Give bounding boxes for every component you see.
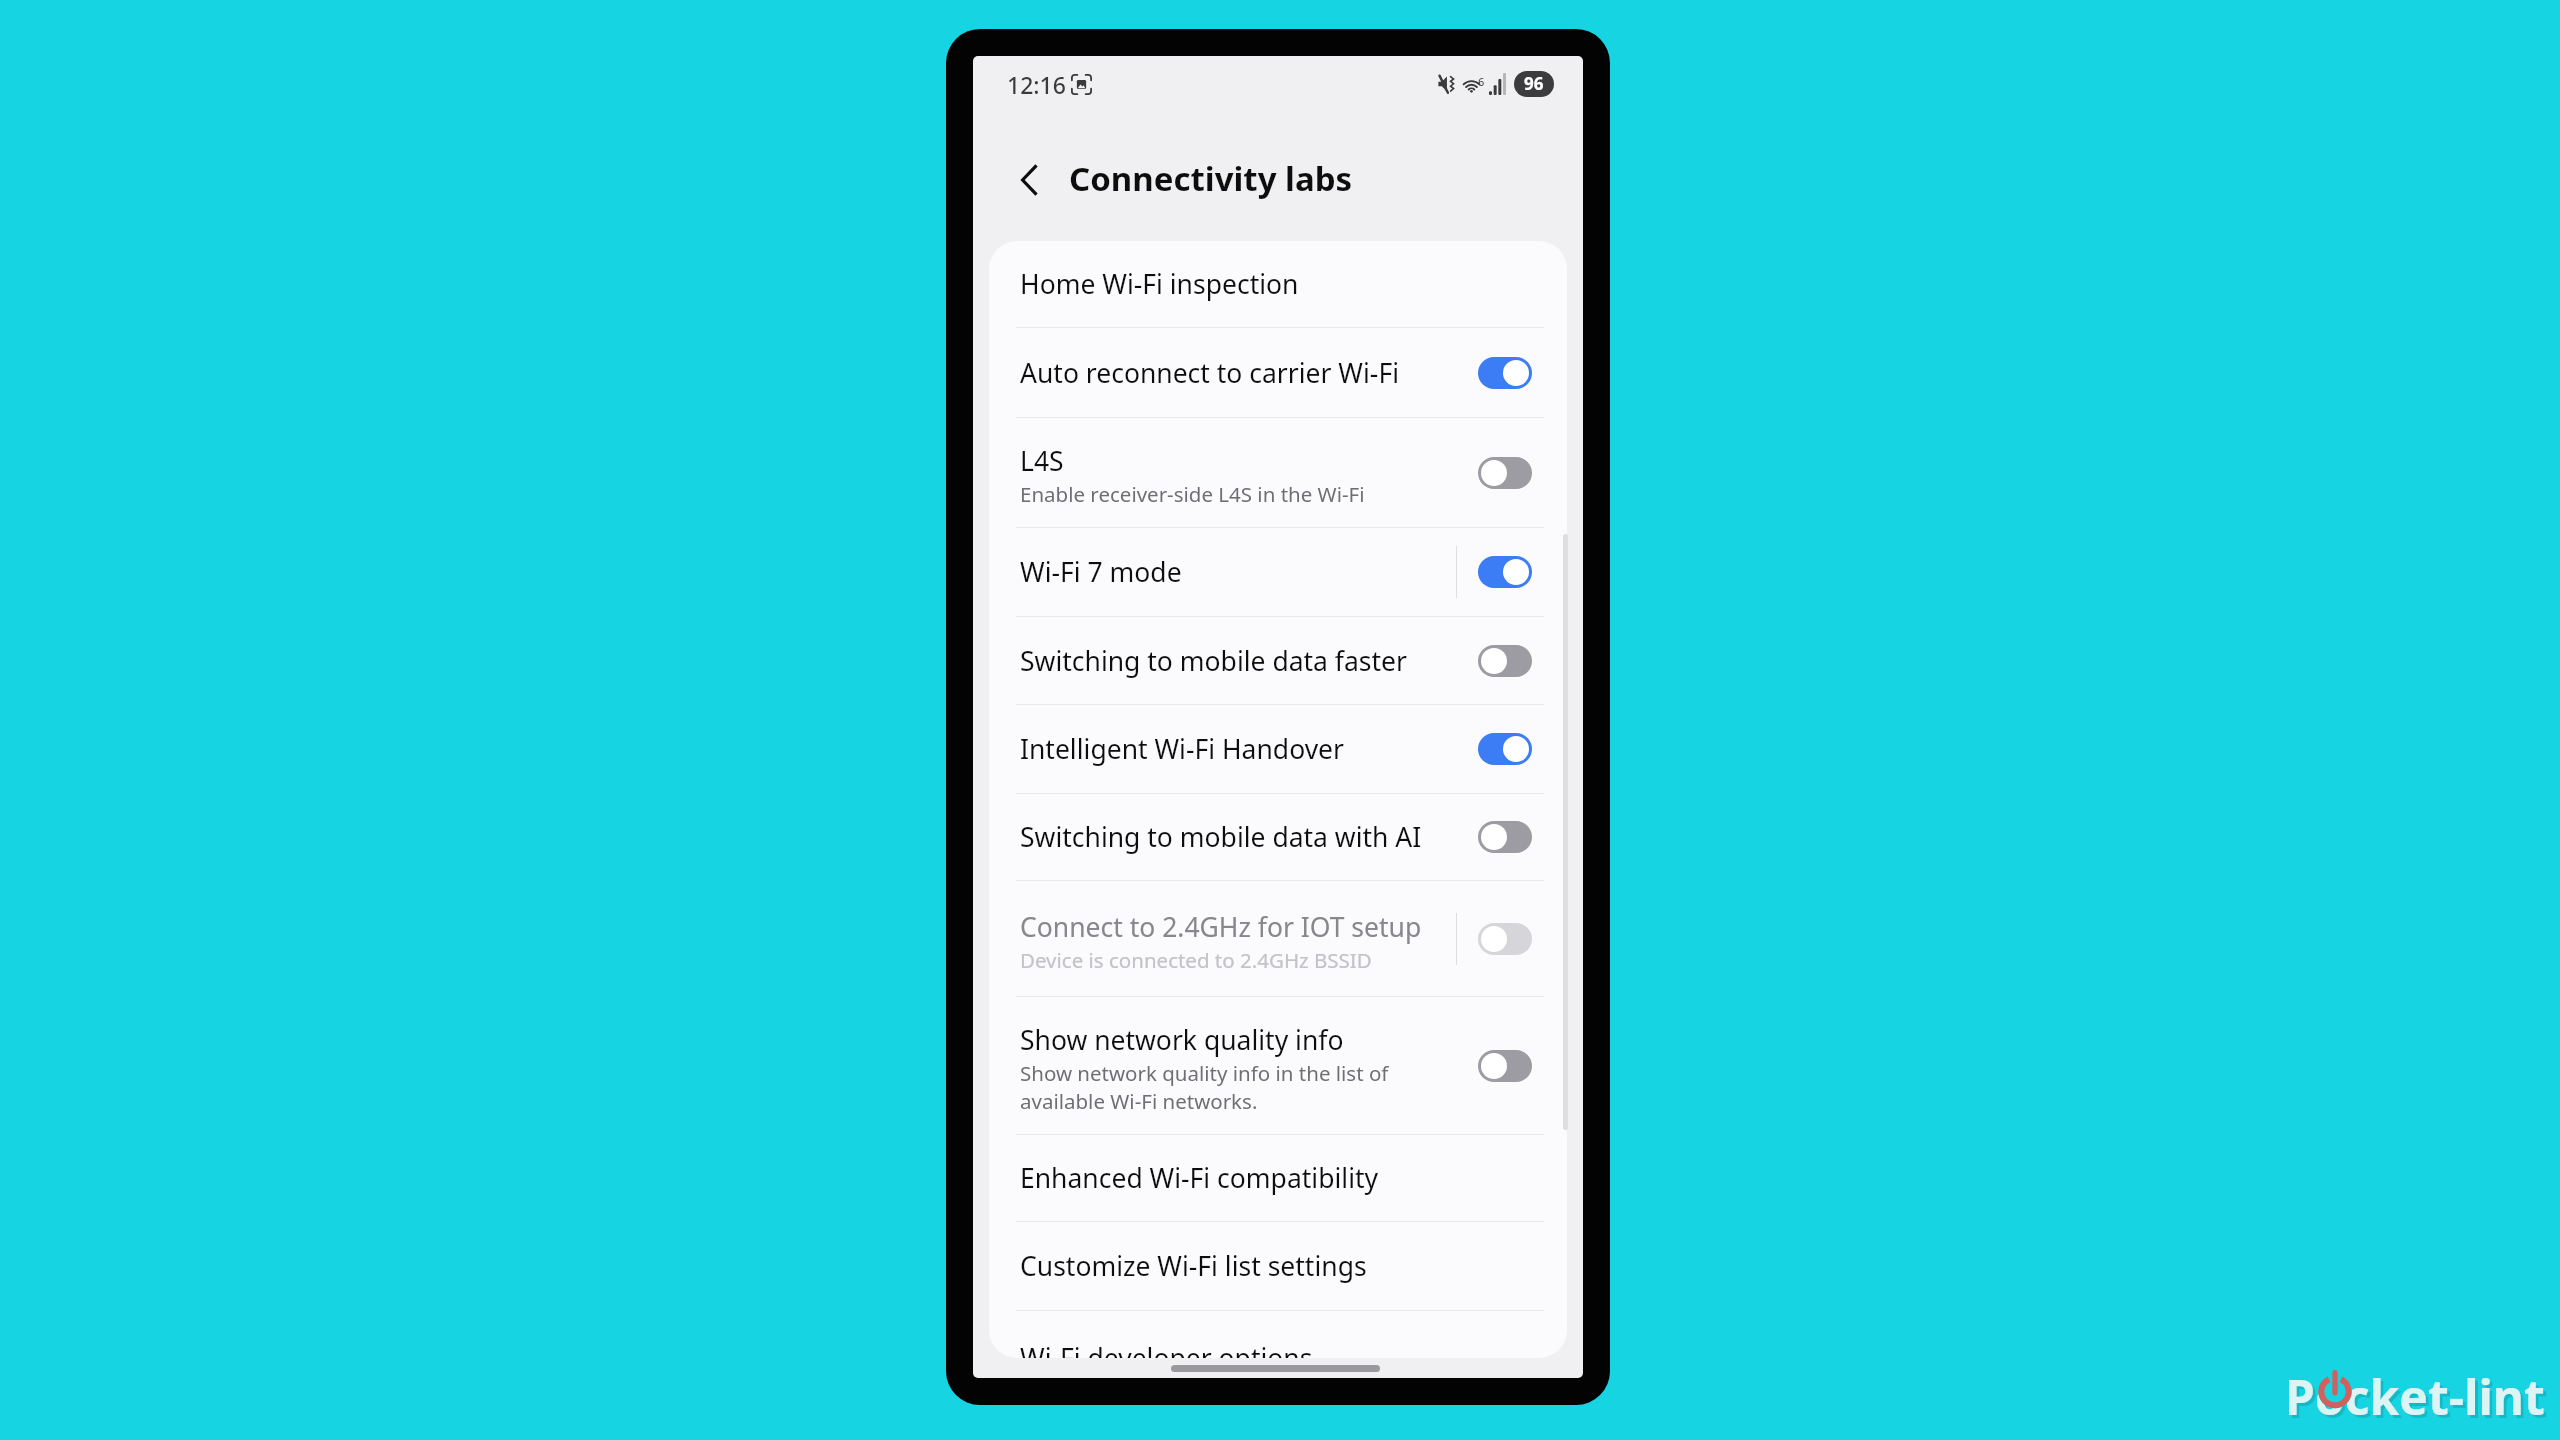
staticText: 6 [1478,74,1485,89]
button[interactable]: Turn off [1478,733,1532,765]
button[interactable]: Turn on [1478,645,1532,677]
staticText: 96 [1524,72,1544,95]
button[interactable]: Show network quality info [989,997,1567,1135]
button[interactable]: Intelligent Wi-Fi Handover [989,705,1567,794]
button[interactable]: Wi-Fi developer options [989,1311,1567,1358]
button[interactable]: Customize Wi-Fi list settings [989,1222,1567,1311]
staticText: Connectivity labs [1069,156,1353,201]
button[interactable]: Enhanced Wi-Fi compatibility [989,1135,1567,1222]
staticText: Show network quality info [1020,1022,1344,1058]
staticText: Device is connected to 2.4GHz BSSID [1020,946,1372,974]
staticText: Enhanced Wi-Fi compatibility [1020,1160,1379,1196]
button[interactable]: Turn on [1478,821,1532,853]
button[interactable]: Turn on [1478,457,1532,489]
button[interactable]: Turn off [1478,556,1532,588]
staticText: Switching to mobile data faster [1020,643,1408,679]
button[interactable]: Home Wi-Fi inspection [989,241,1567,328]
staticText: Home Wi-Fi inspection [1020,266,1299,302]
staticText: Pocket-lint [2285,1364,2545,1424]
button[interactable]: L4S [989,418,1567,528]
button[interactable]: Back [999,150,1059,210]
button[interactable]: Switching to mobile data with AI [989,794,1567,881]
staticText: Show network quality info in the list of… [1020,1059,1389,1115]
staticText: Customize Wi-Fi list settings [1020,1248,1367,1284]
staticText: Switching to mobile data with AI [1020,819,1422,855]
button[interactable]: Switching to mobile data faster [989,617,1567,705]
button[interactable]: Wi-Fi 7 mode [989,528,1567,617]
staticText: 12:16 [1007,69,1066,100]
staticText: Intelligent Wi-Fi Handover [1020,731,1344,767]
staticText: Connect to 2.4GHz for IOT setup [1020,909,1422,945]
button[interactable]: Turn on [1478,923,1532,955]
staticText: Pocket-lint [2288,1367,2548,1427]
staticText: L4S [1020,443,1064,479]
button[interactable]: Turn on [1478,1050,1532,1082]
button[interactable]: Connect to 2.4GHz for IOT setup [989,881,1567,997]
button[interactable]: Auto reconnect to carrier Wi-Fi [989,328,1567,418]
staticText: Auto reconnect to carrier Wi-Fi [1020,355,1399,391]
staticText: Enable receiver-side L4S in the Wi-Fi [1020,480,1365,508]
button[interactable]: Turn off [1478,357,1532,389]
staticText: Wi-Fi developer options [1020,1340,1313,1358]
staticText: Wi-Fi 7 mode [1020,554,1182,590]
